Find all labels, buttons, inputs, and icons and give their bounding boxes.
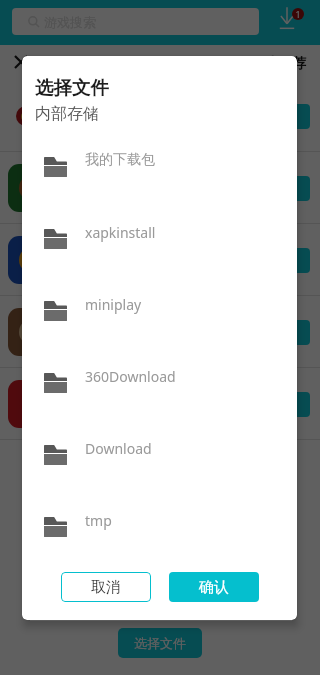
button[interactable]: 安装 [0,224,320,296]
staticText: 更多游戏推荐 [222,55,306,73]
button[interactable]: 安装 [260,104,310,129]
button[interactable]: 安装 [0,80,320,152]
button[interactable]: miniplay [22,275,297,347]
staticText: Download [85,439,152,458]
button[interactable]: 取消 [61,572,151,602]
button[interactable]: 选择文件 [118,628,202,658]
button[interactable]: 安装 [260,320,310,345]
button[interactable]: xapkinstall [22,203,297,275]
button[interactable]: 安装 [0,296,320,368]
button[interactable]: 确认 [169,572,259,602]
button[interactable]: Download [22,419,297,491]
button[interactable]: 游戏搜索 [12,8,259,35]
staticText: 取消 [91,578,121,597]
button[interactable]: 我的下载包 [22,131,297,203]
staticText: xapkinstall [85,223,156,242]
staticText: 1 [295,8,301,20]
staticText: 内部存储 [35,104,99,124]
staticText: miniplay [85,295,142,314]
staticText: 我的下载包 [85,151,155,169]
button[interactable]: 安装 [260,248,310,273]
other: Close [15,56,27,68]
button[interactable]: 安装 [0,368,320,440]
button[interactable]: 安装 [260,176,310,201]
staticText: 确认 [199,578,229,597]
staticText: 选择文件 [35,76,109,99]
button[interactable]: 安装 [0,152,320,224]
button[interactable]: 安装 [260,392,310,417]
button[interactable]: tmp [22,491,297,563]
staticText: 游戏搜索 [44,14,96,30]
staticText: 选择文件 [134,635,186,651]
staticText: 360Download [85,367,176,386]
staticText: tmp [85,511,112,530]
button[interactable]: Downloads [276,4,308,36]
button[interactable]: 360Download [22,347,297,419]
